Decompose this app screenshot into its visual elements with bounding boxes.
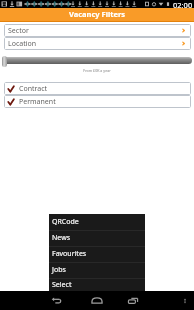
button[interactable]: Home	[86, 291, 108, 310]
staticText: Favourites	[52, 249, 87, 259]
button[interactable]: Contract	[4, 82, 191, 95]
button[interactable]: Location	[4, 37, 191, 50]
staticText: QRCode	[52, 217, 79, 227]
button[interactable]: Recent apps	[122, 291, 144, 310]
staticText: Vacancy Filters	[69, 9, 126, 19]
button[interactable]: QRCode	[49, 214, 145, 230]
button[interactable]: Favourites	[49, 246, 145, 262]
staticText: Location	[8, 39, 37, 49]
button[interactable]: News	[49, 230, 145, 246]
staticText: Permanent	[19, 97, 56, 107]
staticText: Select	[52, 280, 72, 290]
staticText: Sector	[8, 26, 29, 36]
button[interactable]: Select	[49, 278, 145, 292]
button[interactable]: Jobs	[49, 262, 145, 278]
staticText: From £0K a year	[0, 68, 194, 73]
staticText: News	[52, 233, 70, 243]
button[interactable]: Permanent	[4, 95, 191, 108]
button[interactable]: Sector	[4, 24, 191, 37]
staticText: Contract	[19, 84, 48, 94]
button[interactable]: More options	[177, 293, 193, 309]
staticText: Jobs	[52, 265, 66, 275]
button[interactable]: Back	[46, 291, 68, 310]
staticText: 02:00	[173, 0, 193, 8]
button[interactable]: Salary slider	[2, 56, 7, 67]
